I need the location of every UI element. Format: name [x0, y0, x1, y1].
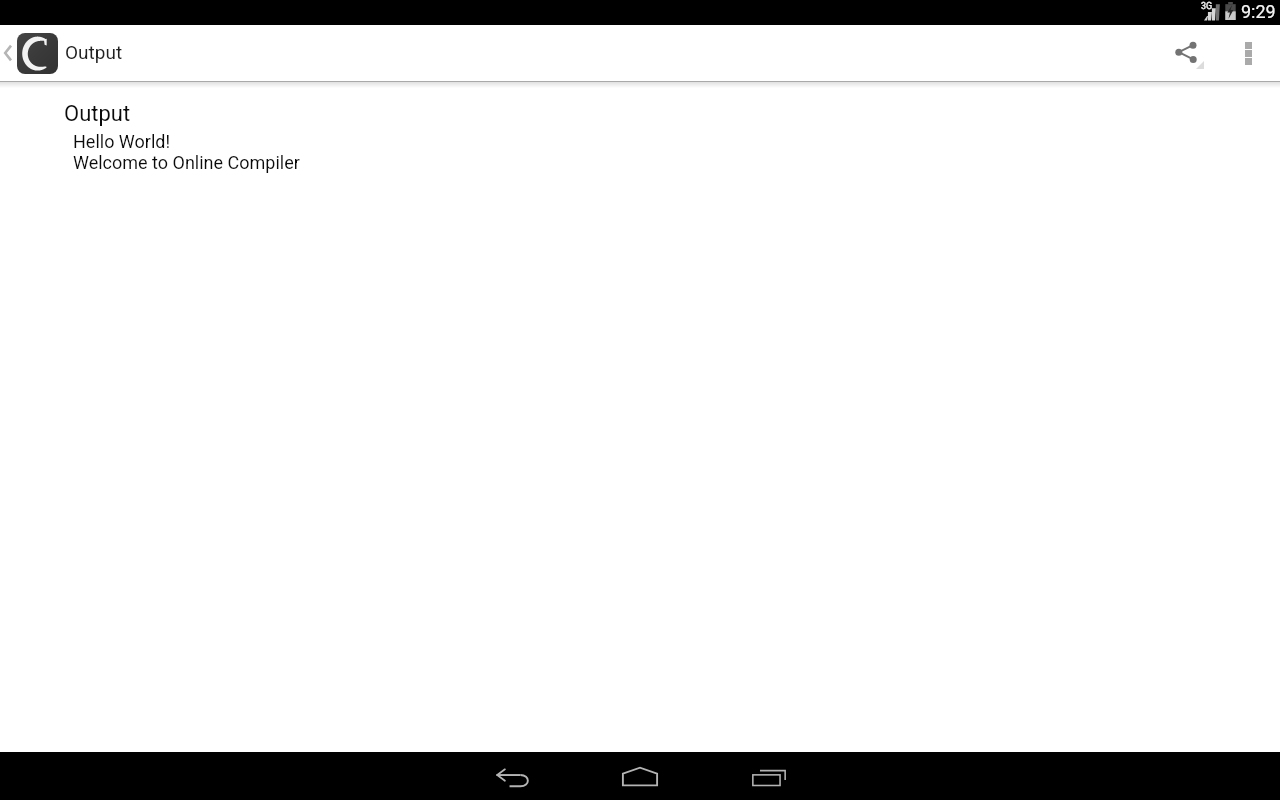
- button[interactable]: Output: [0, 25, 140, 81]
- staticText: Welcome to Online Compiler: [73, 152, 300, 173]
- button[interactable]: Home: [600, 752, 680, 800]
- button[interactable]: Back: [472, 752, 552, 800]
- staticText: Output: [65, 41, 123, 63]
- button[interactable]: Share: [1168, 25, 1224, 81]
- button[interactable]: More options: [1226, 25, 1270, 81]
- staticText: 3G: [1201, 1, 1213, 12]
- staticText: 9:29: [1241, 1, 1276, 22]
- staticText: Hello World!: [73, 131, 171, 152]
- staticText: Output: [64, 101, 131, 127]
- button[interactable]: Recent apps: [728, 752, 808, 800]
